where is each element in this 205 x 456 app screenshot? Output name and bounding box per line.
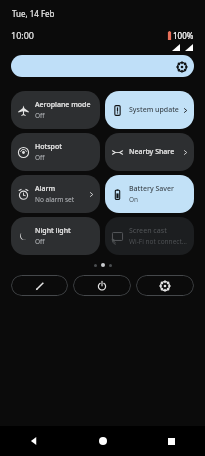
staticText: Screen cast [129,226,167,236]
button[interactable]: System update [105,91,194,129]
button[interactable]: Edit [11,275,68,296]
staticText: 100% [173,30,194,41]
staticText: Night light [35,226,71,236]
staticText: No alarm set [35,195,75,204]
button[interactable]: Aeroplane mode [11,91,100,129]
staticText: On [129,195,139,204]
staticText: Wi-Fi not connected [129,237,189,246]
button[interactable]: Back [22,429,46,453]
button[interactable]: Screen cast [105,217,194,255]
button[interactable]: Nearby Share [105,133,194,171]
staticText: Off [35,153,45,162]
staticText: 10:00 [11,29,35,41]
staticText: Aeroplane mode [35,100,91,110]
staticText: Hotspot [35,142,62,152]
button[interactable]: Settings [175,60,188,73]
staticText: Alarm [35,184,56,194]
button[interactable]: Hotspot [11,133,100,171]
staticText: Off [35,237,45,246]
staticText: Off [35,111,45,120]
button[interactable]: Settings [11,55,194,77]
button[interactable]: Recents [159,429,183,453]
staticText: Nearby Share [129,147,175,157]
button[interactable]: Alarm [11,175,100,213]
button[interactable]: Home [91,429,115,453]
staticText: Battery Saver [129,184,174,194]
staticText: Tue, 14 Feb [12,8,55,19]
button[interactable]: Night light [11,217,100,255]
button[interactable]: Battery Saver [105,175,194,213]
button[interactable]: Settings [136,275,194,296]
button[interactable]: Power [73,275,131,296]
staticText: System update [129,105,179,115]
